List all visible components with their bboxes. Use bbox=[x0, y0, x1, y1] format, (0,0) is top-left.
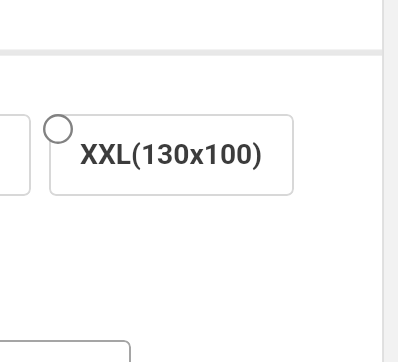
button[interactable]: Select XXL(130x100) bbox=[43, 114, 73, 144]
button[interactable] bbox=[0, 114, 31, 196]
button[interactable]: XXL(130x100) bbox=[49, 114, 294, 196]
staticText: XXL(130x100) bbox=[80, 138, 263, 171]
button[interactable] bbox=[0, 340, 131, 362]
